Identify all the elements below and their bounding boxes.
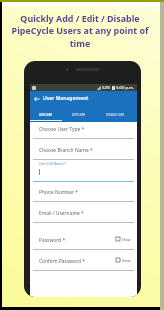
staticText: Phone Number * bbox=[39, 189, 79, 196]
staticText: User Full Name * bbox=[39, 161, 67, 166]
button[interactable]: EDIT USER bbox=[62, 108, 95, 122]
button[interactable]: ADD USER bbox=[30, 108, 62, 122]
staticText: Show bbox=[122, 258, 131, 262]
staticText: DISABLE USER bbox=[106, 113, 125, 117]
button[interactable]: Password * bbox=[30, 234, 137, 250]
button[interactable]: Choose Branch Name * bbox=[30, 144, 137, 160]
staticText: Choose User Type * bbox=[39, 126, 85, 133]
button[interactable]: Show password bbox=[116, 258, 131, 262]
staticText: Choose Branch Name * bbox=[39, 147, 93, 154]
button[interactable]: Confirm Password * bbox=[30, 255, 137, 271]
staticText: Quickly Add / Edit / Disable PipeCycle U… bbox=[8, 12, 152, 50]
button[interactable]: Email / Username * bbox=[30, 207, 137, 223]
staticText: EDIT USER bbox=[72, 113, 86, 117]
staticText: User Management bbox=[43, 95, 89, 102]
staticText: 6:00 p.m. bbox=[116, 85, 135, 91]
button[interactable]: Choose User Type * bbox=[30, 123, 137, 139]
button[interactable]: Phone Number * bbox=[30, 186, 137, 202]
staticText: Show bbox=[122, 237, 131, 241]
staticText: Email / Username * bbox=[39, 210, 84, 217]
button[interactable]: DISABLE USER bbox=[95, 108, 136, 122]
staticText: Password * bbox=[39, 237, 66, 244]
other: Back bbox=[34, 96, 40, 102]
staticText: 52% bbox=[102, 85, 111, 91]
button[interactable]: Back bbox=[30, 91, 137, 106]
button[interactable]: User Full Name * bbox=[30, 161, 137, 183]
staticText: Confirm Password * bbox=[39, 258, 85, 265]
staticText: ADD USER bbox=[39, 113, 53, 117]
button[interactable]: Show password bbox=[116, 237, 131, 241]
